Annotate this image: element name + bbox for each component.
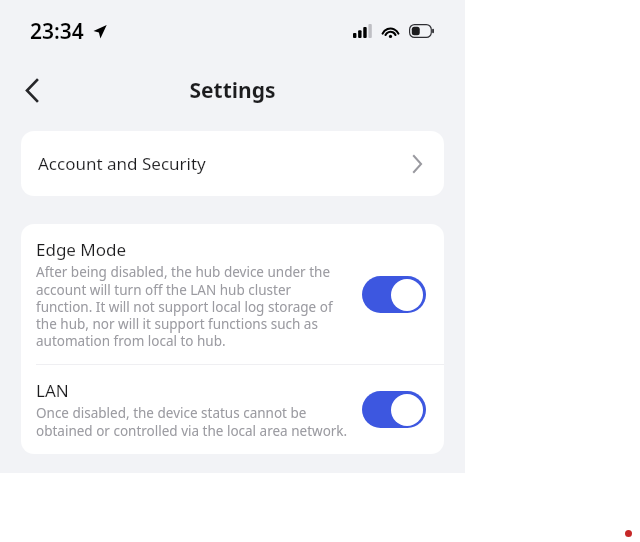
staticText: Edge Mode: [36, 238, 127, 261]
button[interactable]: Back: [12, 70, 52, 110]
button[interactable]: Toggle on: [362, 391, 426, 428]
staticText: After being disabled, the hub device und…: [36, 263, 350, 350]
staticText: Settings: [189, 76, 276, 105]
staticText: LAN: [36, 379, 69, 402]
button[interactable]: LAN: [21, 365, 444, 454]
staticText: Once disabled, the device status cannot …: [36, 404, 350, 440]
button[interactable]: Toggle on: [362, 276, 426, 313]
button[interactable]: Account and Security: [21, 131, 444, 196]
staticText: Account and Security: [38, 152, 206, 175]
staticText: 23:34: [30, 17, 84, 46]
button[interactable]: Edge Mode: [21, 224, 444, 364]
